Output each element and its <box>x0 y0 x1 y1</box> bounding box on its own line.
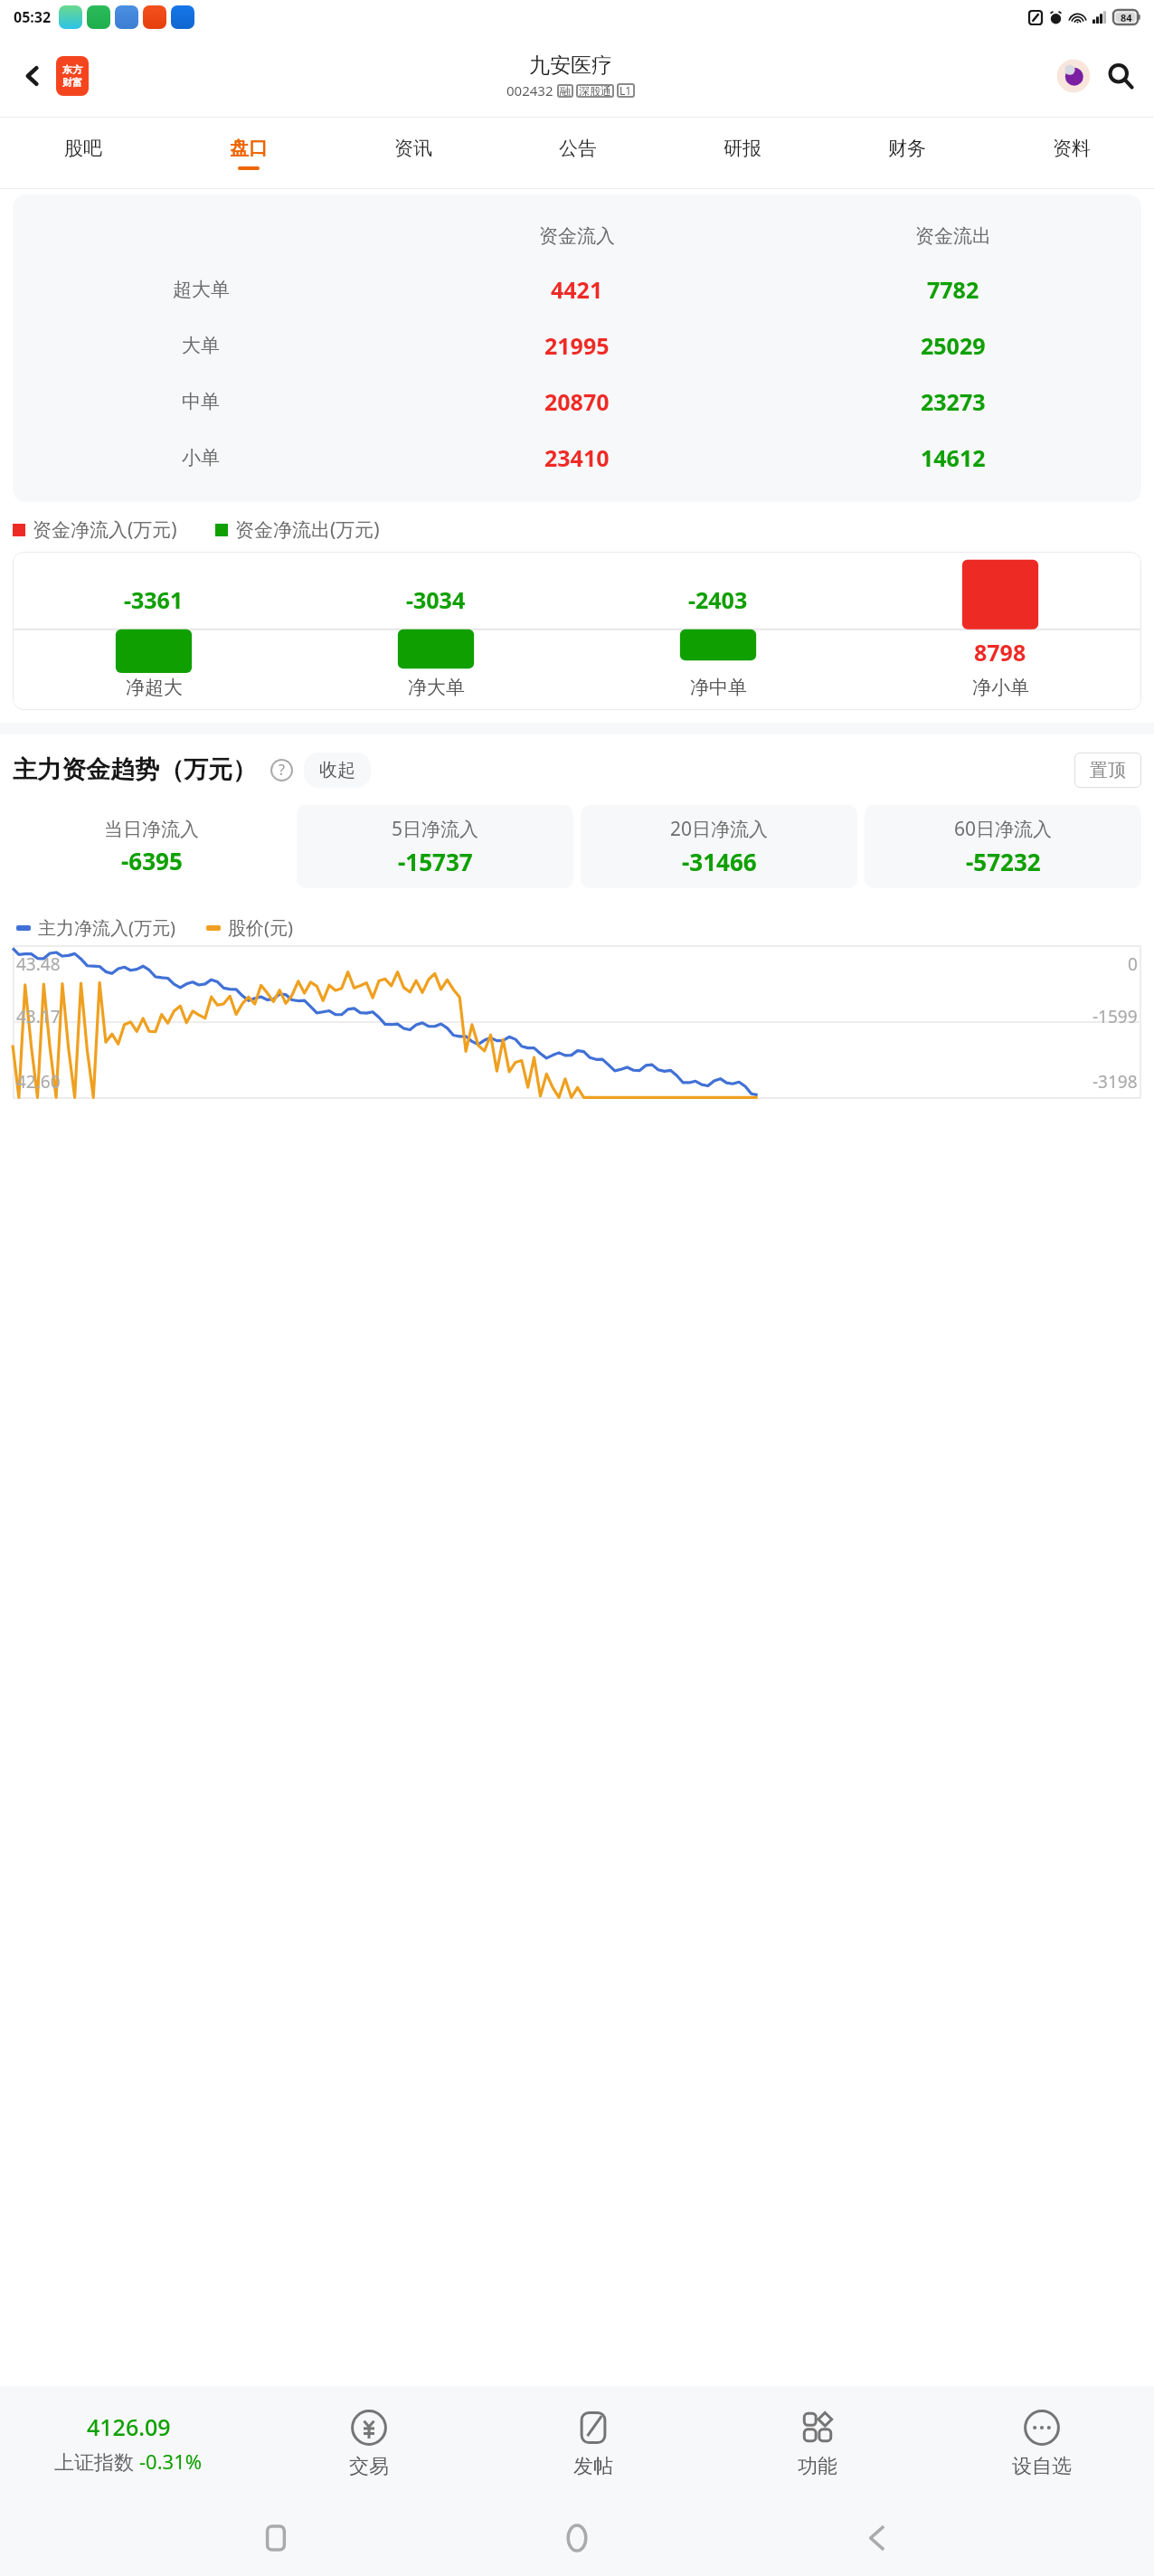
button[interactable]: 资讯 <box>331 118 496 188</box>
button[interactable]: 盘口 <box>166 118 331 188</box>
button[interactable]: 财务 <box>825 118 989 188</box>
button[interactable]: 公告 <box>496 118 660 188</box>
staticText: 84 <box>1121 11 1132 24</box>
button[interactable]: 股吧 <box>0 118 166 188</box>
staticText: 43.48 <box>16 952 61 976</box>
staticText: 九安医疗 <box>529 52 612 79</box>
button[interactable]: 20日净流入 <box>581 805 857 888</box>
button[interactable]: Back <box>853 2513 903 2563</box>
staticText: 财务 <box>888 137 926 160</box>
staticText: -6395 <box>121 845 183 876</box>
staticText: 公告 <box>559 137 597 160</box>
button[interactable]: 置顶 <box>1074 753 1141 788</box>
button[interactable]: 60日净流入 <box>865 805 1141 888</box>
staticText: 财富 <box>62 76 82 89</box>
staticText: 小单 <box>182 446 220 469</box>
button[interactable]: 研报 <box>660 118 825 188</box>
staticText: 资金净流入(万元) <box>33 516 177 543</box>
staticText: 融 <box>560 84 571 98</box>
staticText: 23273 <box>921 386 986 417</box>
staticText: 002432 <box>506 81 553 99</box>
button[interactable]: Back <box>13 56 52 96</box>
staticText: 0 <box>1128 952 1138 976</box>
button[interactable]: 当日净流入 <box>13 805 289 888</box>
button[interactable]: 发帖 <box>481 2386 705 2500</box>
staticText: 资金流入 <box>539 224 615 248</box>
button[interactable]: 收起 <box>304 753 371 788</box>
staticText: 主力资金趋势（万元） <box>13 754 257 785</box>
staticText: 20870 <box>544 386 610 417</box>
staticText: 5日净流入 <box>392 816 479 842</box>
staticText: 资金净流出(万元) <box>235 516 380 543</box>
staticText: 当日净流入 <box>104 818 199 841</box>
staticText: 资料 <box>1053 137 1091 160</box>
staticText: -57232 <box>966 846 1041 877</box>
button[interactable]: 4126.09 <box>0 2411 257 2475</box>
staticText: 4421 <box>551 274 603 305</box>
button[interactable]: Search <box>1100 55 1141 97</box>
staticText: 7782 <box>927 274 979 305</box>
staticText: 14612 <box>921 442 986 473</box>
staticText: -15737 <box>398 846 473 877</box>
staticText: L1 <box>620 83 632 98</box>
staticText: ? <box>279 760 285 780</box>
staticText: 收起 <box>319 759 355 781</box>
staticText: 43.17 <box>16 1005 61 1028</box>
staticText: -1599 <box>1093 1005 1138 1028</box>
staticText: 42.60 <box>16 1070 61 1094</box>
staticText: 中单 <box>182 390 220 413</box>
button[interactable]: Home <box>552 2513 602 2563</box>
staticText: -3361 <box>124 584 184 615</box>
staticText: -3034 <box>406 584 466 615</box>
staticText: 净小单 <box>972 676 1029 699</box>
staticText: -31466 <box>682 846 757 877</box>
button[interactable]: 功能 <box>705 2386 930 2500</box>
staticText: 25029 <box>921 330 986 361</box>
staticText: 盘口 <box>230 137 268 160</box>
staticText: 21995 <box>544 330 610 361</box>
staticText: 资金流出 <box>915 224 991 248</box>
staticText: 60日净流入 <box>954 816 1053 842</box>
staticText: 资讯 <box>394 137 432 160</box>
staticText: 8798 <box>974 637 1026 668</box>
staticText: 研报 <box>724 137 761 160</box>
staticText: -3198 <box>1093 1070 1138 1094</box>
staticText: 20日净流入 <box>670 816 769 842</box>
button[interactable]: Recents <box>251 2513 301 2563</box>
staticText: 设自选 <box>1012 2454 1072 2479</box>
staticText: 大单 <box>182 334 220 357</box>
staticText: 超大单 <box>173 278 230 301</box>
staticText: 交易 <box>349 2454 389 2479</box>
staticText: 05:32 <box>14 7 52 27</box>
button[interactable]: 5日净流入 <box>297 805 573 888</box>
button[interactable]: 交易 <box>257 2386 481 2500</box>
staticText: 发帖 <box>573 2454 613 2479</box>
staticText: -2403 <box>688 584 748 615</box>
staticText: 主力净流入(万元) <box>38 915 175 940</box>
staticText: 东方 <box>62 63 82 76</box>
button[interactable]: Help <box>268 756 295 783</box>
staticText: 置顶 <box>1090 759 1126 781</box>
staticText: 股价(元) <box>228 915 293 940</box>
staticText: 净超大 <box>126 676 183 699</box>
staticText: -0.31% <box>139 2448 203 2475</box>
staticText: 上证指数 <box>54 2448 139 2475</box>
staticText: 4126.09 <box>87 2411 171 2442</box>
button[interactable]: Assistant <box>1053 55 1094 97</box>
button[interactable]: 东方财富 <box>56 56 89 96</box>
button[interactable]: 设自选 <box>930 2386 1154 2500</box>
staticText: 深股通 <box>579 84 611 98</box>
button[interactable]: 资料 <box>989 118 1154 188</box>
staticText: 功能 <box>798 2454 837 2479</box>
staticText: 净中单 <box>690 676 747 699</box>
staticText: 股吧 <box>64 137 102 160</box>
staticText: 23410 <box>544 442 610 473</box>
staticText: 净大单 <box>408 676 465 699</box>
